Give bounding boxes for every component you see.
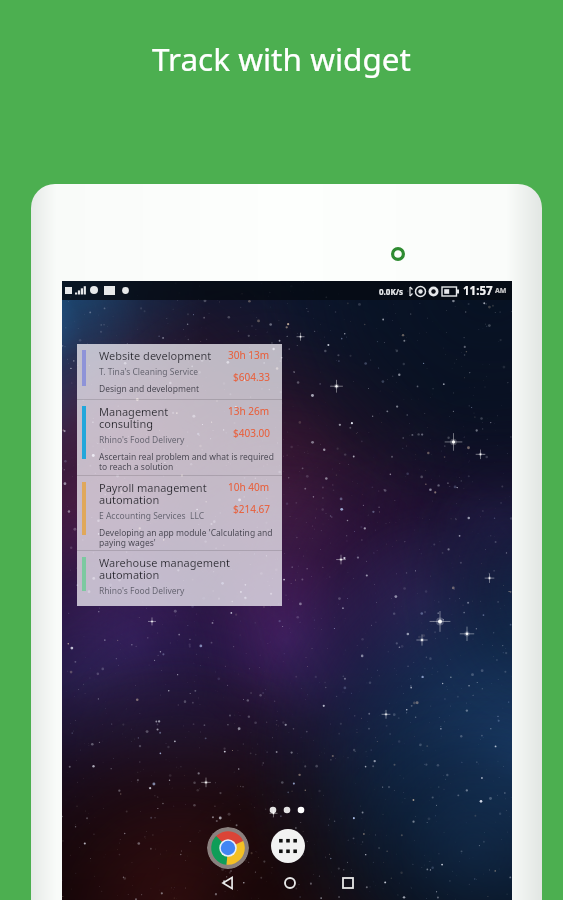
staticText: Rhino's Food Delivery [99,434,234,446]
button[interactable]: Back [208,865,248,900]
staticText: Design and development [99,383,277,395]
staticText: $403.00 [233,426,270,440]
button[interactable]: Apps [271,829,305,863]
staticText: 13h 26m [228,404,270,418]
button[interactable]: Website development [77,344,282,399]
staticText: $214.67 [233,502,270,516]
staticText: Rhino's Food Delivery [99,585,234,597]
staticText: Payroll management automation [99,480,225,507]
staticText: Warehouse management automation [99,555,277,582]
staticText: Track with widget [0,37,563,80]
staticText: Management consulting [99,404,225,431]
staticText: T. Tina's Cleaning Service [99,366,234,378]
staticText: Website development [99,348,225,363]
button[interactable]: Warehouse management automation [77,551,282,606]
button[interactable]: Management consulting [77,400,282,475]
staticText: Developing an app module 'Calculating an… [99,527,277,549]
staticText: 10h 40m [228,480,270,494]
staticText: 30h 13m [228,348,270,362]
staticText: AM [495,286,507,296]
staticText: $604.33 [233,370,270,384]
staticText: Ascertain real problem and what is requi… [99,451,277,473]
staticText: E Accounting Services LLC [99,510,234,522]
button[interactable]: Payroll management automation [77,476,282,550]
staticText: 0.0K/s [379,286,404,297]
button[interactable]: Home [270,865,310,900]
button[interactable]: Recents [328,865,368,900]
button[interactable]: Chrome [207,827,249,869]
staticText: 11:57 [463,283,493,299]
